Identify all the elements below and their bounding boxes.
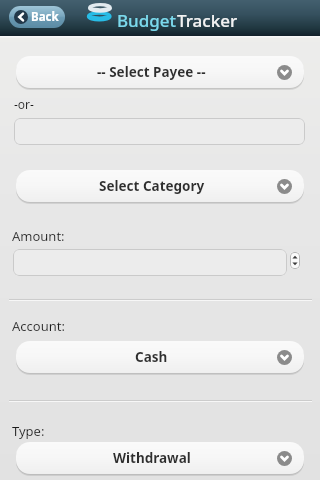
button[interactable] — [14, 118, 305, 145]
button[interactable]: Adjust amount — [290, 252, 300, 269]
staticText: Withdrawal — [113, 449, 191, 467]
staticText: Tracker — [177, 9, 238, 32]
button[interactable]: -- Select Payee -- — [16, 56, 304, 88]
staticText: Budget — [117, 9, 177, 32]
staticText: Back — [31, 9, 59, 25]
button[interactable]: Select Category — [16, 170, 304, 202]
staticText: Select Category — [99, 177, 205, 195]
button[interactable]: Back — [9, 6, 65, 28]
staticText: Type: — [12, 422, 45, 440]
staticText: -or- — [14, 96, 34, 112]
staticText: Amount: — [12, 227, 65, 245]
button[interactable] — [13, 249, 287, 276]
button[interactable]: Withdrawal — [16, 442, 304, 474]
staticText: -- Select Payee -- — [97, 63, 206, 81]
staticText: Account: — [12, 317, 65, 335]
staticText: Cash — [135, 348, 168, 366]
button[interactable]: Cash — [16, 341, 304, 373]
